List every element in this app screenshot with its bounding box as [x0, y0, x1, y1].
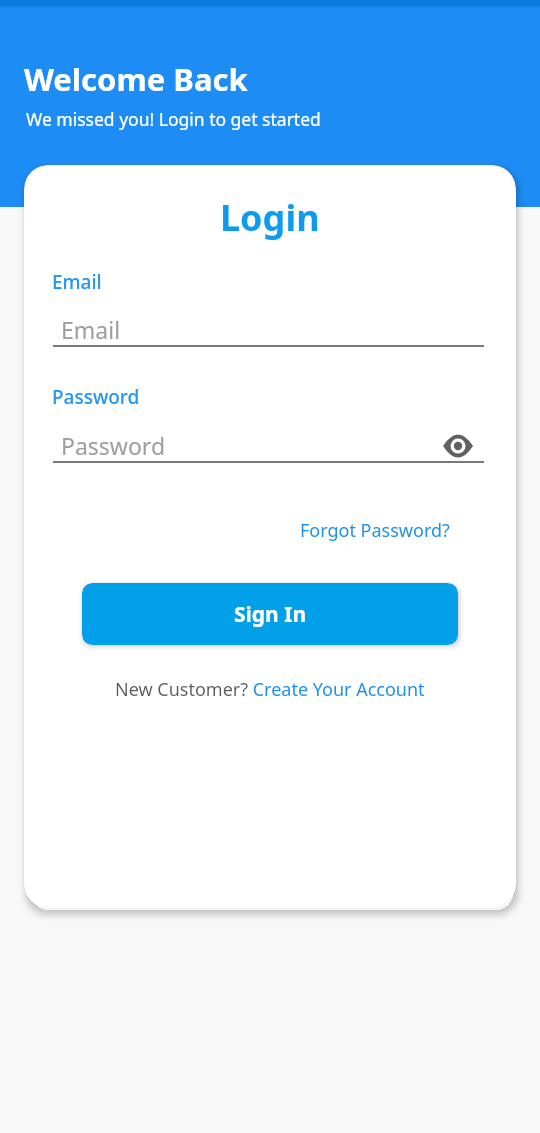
button[interactable]: Sign In — [82, 583, 458, 645]
button[interactable]: Forgot Password? — [300, 518, 450, 543]
button[interactable]: New Customer? Create Your Account — [115, 677, 425, 702]
staticText: Sign In — [234, 600, 307, 629]
staticText: We missed you! Login to get started — [26, 107, 321, 131]
staticText: Login — [220, 193, 320, 242]
button[interactable] — [443, 435, 473, 457]
staticText: Email — [52, 269, 102, 295]
staticText: Email — [61, 314, 121, 345]
staticText: Password — [61, 430, 166, 461]
staticText: Password — [52, 384, 140, 410]
staticText: Welcome Back — [24, 58, 248, 100]
